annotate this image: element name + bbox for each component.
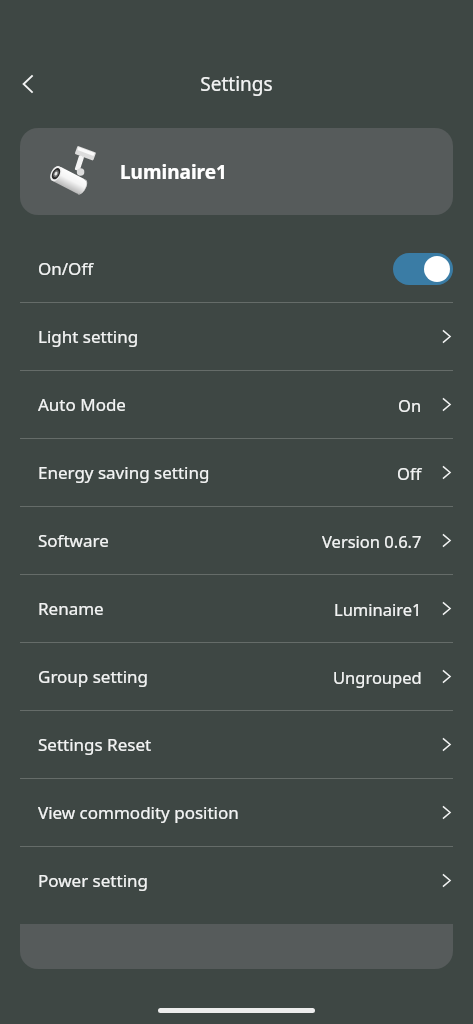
staticText: Settings Reset — [38, 733, 152, 756]
staticText: View commodity position — [38, 801, 239, 824]
staticText: Luminaire1 — [334, 598, 422, 620]
staticText: On/Off — [38, 257, 94, 280]
button[interactable]: Light setting — [0, 303, 473, 370]
staticText: Light setting — [38, 325, 139, 348]
button[interactable]: Auto Mode — [0, 371, 473, 438]
staticText: Auto Mode — [38, 393, 126, 416]
button[interactable]: Energy saving setting — [0, 439, 473, 506]
button[interactable]: On/Off switch — [393, 253, 453, 285]
button[interactable]: Settings Reset — [0, 711, 473, 778]
staticText: Off — [397, 462, 422, 484]
staticText: On — [398, 394, 422, 416]
staticText: Software — [38, 529, 109, 552]
button[interactable]: Back — [6, 62, 50, 106]
staticText: Rename — [38, 597, 104, 620]
staticText: Version 0.6.7 — [322, 530, 422, 552]
staticText: Ungrouped — [333, 666, 422, 688]
staticText: Luminaire1 — [120, 159, 227, 185]
staticText: Power setting — [38, 869, 148, 892]
button[interactable]: Group setting — [0, 643, 473, 710]
staticText: Settings — [200, 71, 273, 97]
button[interactable]: Power setting — [0, 847, 473, 914]
staticText: Energy saving setting — [38, 461, 210, 484]
button[interactable]: View commodity position — [0, 779, 473, 846]
button[interactable]: Rename — [0, 575, 473, 642]
button[interactable]: On/Off — [0, 235, 473, 302]
button[interactable]: Luminaire1 — [20, 128, 453, 215]
staticText: Group setting — [38, 665, 149, 688]
button[interactable]: Software — [0, 507, 473, 574]
